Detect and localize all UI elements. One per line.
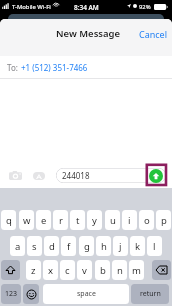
button[interactable]: Apps <box>33 172 45 180</box>
button[interactable]: k <box>130 236 145 256</box>
staticText: e <box>41 214 47 227</box>
staticText: New Message <box>56 27 121 40</box>
staticText: l <box>153 240 156 253</box>
button[interactable]: h <box>96 236 111 256</box>
staticText: c <box>65 264 70 277</box>
button[interactable]: q <box>1 210 16 230</box>
staticText: s <box>32 240 37 253</box>
button[interactable]: Send <box>149 169 163 183</box>
staticText: w <box>23 214 31 227</box>
button[interactable]: n <box>112 260 127 280</box>
button[interactable]: space <box>43 284 129 304</box>
staticText: x <box>48 264 54 277</box>
staticText: r <box>59 214 63 227</box>
staticText: k <box>135 240 141 253</box>
staticText: v <box>82 264 87 277</box>
button[interactable]: a <box>10 236 25 256</box>
staticText: f <box>67 240 71 253</box>
button[interactable]: x <box>43 260 58 280</box>
button[interactable]: Emoji <box>23 284 39 304</box>
staticText: m <box>132 264 141 277</box>
button[interactable]: s <box>27 236 42 256</box>
button[interactable]: p <box>156 210 171 230</box>
button[interactable]: Take photo <box>9 171 22 180</box>
button[interactable]: d <box>44 236 59 256</box>
staticText: h <box>101 240 107 253</box>
staticText: space <box>77 289 96 299</box>
button[interactable]: g <box>79 236 94 256</box>
staticText: u <box>110 214 116 227</box>
button[interactable]: z <box>26 260 41 280</box>
staticText: a <box>15 240 21 253</box>
button[interactable]: Shift <box>1 260 20 280</box>
button[interactable]: r <box>53 210 68 230</box>
button[interactable]: To: <box>0 56 172 78</box>
staticText: n <box>117 264 123 277</box>
staticText: b <box>100 264 106 277</box>
button[interactable]: y <box>87 210 102 230</box>
button[interactable]: f <box>61 236 76 256</box>
staticText: o <box>144 214 150 227</box>
button[interactable]: 244018 <box>56 168 166 183</box>
staticText: 123 <box>5 289 18 299</box>
staticText: Cancel <box>139 28 168 40</box>
button[interactable]: l <box>147 236 162 256</box>
button[interactable]: v <box>77 260 92 280</box>
button[interactable]: i <box>122 210 137 230</box>
button[interactable]: j <box>113 236 128 256</box>
button[interactable]: Backspace <box>152 260 171 280</box>
staticText: t <box>76 214 80 227</box>
button[interactable]: return <box>131 284 169 304</box>
staticText: 8:34 AM <box>74 3 99 12</box>
staticText: To: <box>7 62 18 73</box>
staticText: p <box>161 214 167 227</box>
staticText: T-Mobile Wi-Fi <box>12 3 51 11</box>
staticText: q <box>6 214 12 227</box>
staticText: i <box>128 214 131 227</box>
button[interactable]: m <box>129 260 144 280</box>
staticText: 244018 <box>62 170 90 181</box>
button[interactable]: t <box>70 210 85 230</box>
staticText: return <box>140 289 161 299</box>
button[interactable]: b <box>95 260 110 280</box>
button[interactable]: o <box>139 210 154 230</box>
staticText: z <box>31 264 36 277</box>
button[interactable]: w <box>19 210 34 230</box>
button[interactable]: 123 <box>1 284 21 304</box>
staticText: d <box>49 240 55 253</box>
staticText: g <box>84 240 90 253</box>
button[interactable]: u <box>105 210 120 230</box>
button[interactable]: e <box>36 210 51 230</box>
staticText: 92% <box>139 3 151 11</box>
staticText: j <box>119 240 122 253</box>
button[interactable]: Cancel <box>137 27 170 41</box>
staticText: +1 (512) 351-7466 <box>21 62 88 73</box>
staticText: y <box>92 214 97 227</box>
button[interactable]: c <box>60 260 75 280</box>
